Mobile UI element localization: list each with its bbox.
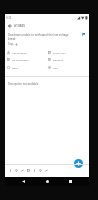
button[interactable]: Open [7, 64, 47, 71]
button[interactable]: 05 Jun 2021 [48, 49, 88, 56]
staticText: 9:30 [6, 16, 12, 20]
staticText: Tags [8, 42, 14, 46]
button[interactable]: Underline [31, 167, 37, 173]
button[interactable]: No component [7, 56, 47, 63]
staticText: Add [53, 66, 58, 69]
button[interactable]: Add comment [74, 159, 83, 168]
button[interactable]: Deadline [48, 56, 88, 63]
button[interactable]: Recent apps [66, 177, 75, 186]
button[interactable]: Bold [19, 167, 25, 173]
button[interactable]: Undo [7, 167, 13, 173]
staticText: Description not available [8, 82, 39, 86]
button[interactable]: Add [48, 64, 88, 71]
button[interactable]: Attach [43, 167, 49, 173]
button[interactable]: Flag issue [80, 31, 86, 37]
staticText: Deadline [53, 58, 63, 61]
staticText: 05 Jun 2021 [53, 51, 67, 54]
staticText: No component [12, 58, 29, 61]
staticText: Deadman unable to withstand the low volt… [8, 33, 69, 40]
button[interactable]: Not assigned [7, 49, 47, 56]
staticText: #10825 [14, 24, 26, 28]
staticText: Open [12, 66, 19, 69]
button[interactable]: Italic [25, 167, 31, 173]
button[interactable]: Home [43, 177, 52, 186]
button[interactable]: Navigate up [6, 22, 14, 30]
staticText: Not assigned [12, 51, 27, 54]
button[interactable]: Redo [13, 167, 19, 173]
button[interactable]: Bullet list [37, 167, 43, 173]
button[interactable]: Back [19, 177, 28, 186]
